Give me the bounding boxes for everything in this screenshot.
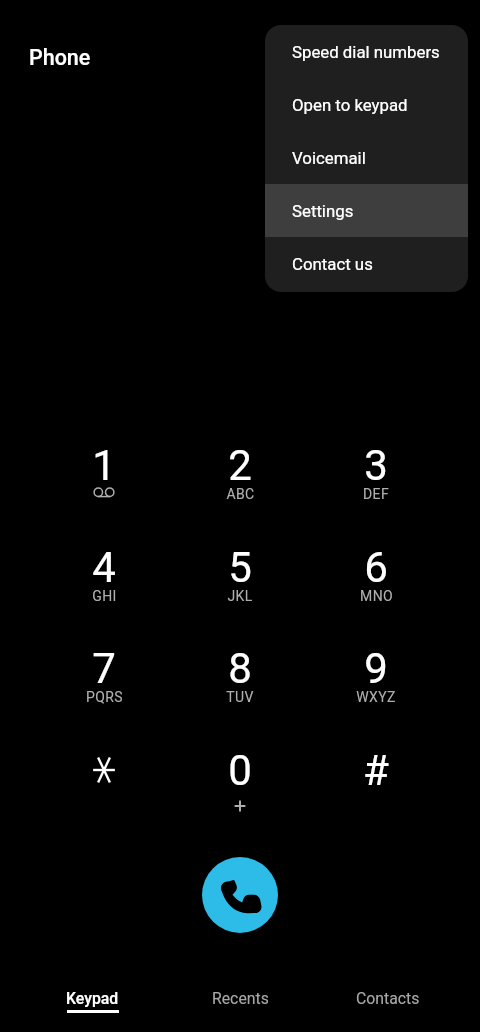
button[interactable]: Keypad (27, 976, 157, 1032)
button[interactable]: 0 (178, 722, 302, 818)
staticText: 5 (228, 543, 252, 591)
staticText: Contacts (356, 989, 420, 1008)
staticText: Phone (29, 45, 91, 70)
staticText: GHI (92, 588, 117, 604)
staticText: WXYZ (356, 689, 396, 705)
staticText: Contact us (292, 254, 373, 274)
staticText: Open to keypad (292, 95, 408, 115)
staticText: 1 (92, 441, 116, 489)
staticText: Keypad (66, 989, 119, 1008)
staticText: ABC (226, 486, 255, 502)
button[interactable]: Contact us (265, 237, 468, 290)
staticText: Recents (212, 989, 269, 1008)
staticText: 4 (92, 543, 116, 591)
staticText: PQRS (86, 689, 123, 705)
button[interactable]: 5 (178, 519, 302, 615)
staticText: Speed dial numbers (292, 42, 440, 62)
staticText: 7 (92, 644, 116, 692)
staticText: 6 (364, 543, 388, 591)
staticText: 3 (364, 441, 388, 489)
button[interactable]: 8 (178, 620, 302, 716)
button[interactable]: 6 (314, 519, 438, 615)
button[interactable]: 7 (42, 620, 166, 716)
staticText: TUV (226, 689, 254, 705)
button[interactable]: Voicemail (265, 131, 468, 184)
button[interactable]: 9 (314, 620, 438, 716)
button[interactable]: Speed dial numbers (265, 25, 468, 78)
button[interactable]: Open to keypad (265, 78, 468, 131)
button[interactable]: 4 (42, 519, 166, 615)
button[interactable]: star (42, 722, 166, 818)
staticText: JKL (227, 588, 253, 604)
button[interactable]: 1 voicemail (42, 417, 166, 513)
staticText: Voicemail (292, 148, 366, 168)
staticText: DEF (363, 486, 389, 502)
staticText: 2 (228, 441, 252, 489)
button[interactable]: 2 (178, 417, 302, 513)
button[interactable]: Settings (265, 184, 468, 237)
button[interactable]: Recents (175, 976, 305, 1032)
staticText: 0 (228, 746, 252, 794)
staticText: # (363, 746, 389, 794)
button[interactable]: pound (314, 722, 438, 818)
staticText: Settings (292, 201, 354, 221)
button[interactable]: Contacts (323, 976, 453, 1032)
button[interactable]: 3 (314, 417, 438, 513)
staticText: MNO (360, 588, 393, 604)
button[interactable]: Call (202, 857, 278, 933)
staticText: 9 (364, 644, 388, 692)
staticText: 8 (228, 644, 252, 692)
